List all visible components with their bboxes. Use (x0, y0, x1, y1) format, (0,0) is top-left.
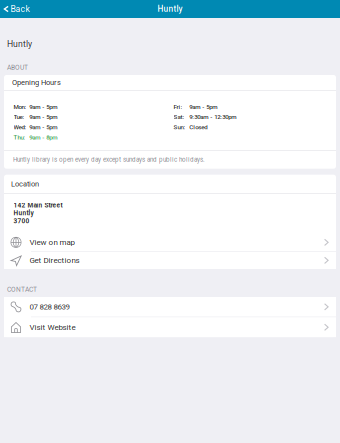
staticText: Visit Website (29, 323, 75, 332)
button[interactable]: Visit Website (4, 317, 336, 337)
staticText: 3700 (13, 217, 29, 225)
staticText: Closed (189, 124, 207, 131)
staticText: ABOUT (7, 64, 28, 71)
staticText: View on map (29, 238, 74, 247)
staticText: Location (11, 180, 39, 188)
staticText: Huntly (7, 39, 32, 49)
button[interactable]: Get Directions (4, 252, 336, 269)
staticText: Fri: (173, 103, 182, 110)
staticText: Wed: (13, 124, 26, 131)
staticText: 07 828 8639 (29, 302, 69, 312)
staticText: Thu: (13, 134, 25, 141)
staticText: Sat: (173, 113, 184, 121)
staticText: Tue: (13, 113, 24, 121)
staticText: 142 Main Street (13, 201, 62, 209)
staticText: 9:30am - 12:30pm (189, 113, 236, 121)
staticText: 9am - 5pm (29, 124, 57, 131)
staticText: 9am - 5pm (29, 113, 57, 121)
staticText: Back (10, 4, 29, 14)
staticText: 9am - 5pm (189, 103, 217, 110)
staticText: Huntly (13, 209, 33, 217)
button[interactable]: View on map (4, 234, 336, 251)
staticText: Huntly (157, 4, 182, 14)
staticText: Sun: (173, 124, 185, 131)
staticText: Huntly library is open every day except … (13, 156, 205, 163)
staticText: Opening Hours (12, 78, 61, 87)
staticText: Get Directions (29, 256, 79, 265)
staticText: 9am - 5pm (29, 103, 57, 110)
staticText: 9am - 8pm (29, 134, 57, 141)
button[interactable]: 07 828 8639 (4, 297, 336, 317)
staticText: Mon: (13, 103, 26, 110)
staticText: CONTACT (7, 286, 37, 293)
button[interactable]: Back (0, 0, 29, 18)
